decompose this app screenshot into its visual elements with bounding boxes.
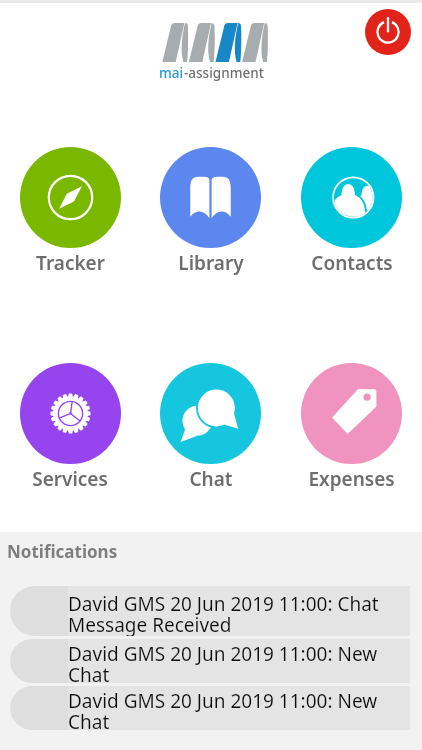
- button[interactable]: David GMS 20 Jun 2019 11:00: Chat Messag…: [0, 586, 422, 636]
- button[interactable]: Contacts: [281, 147, 422, 276]
- button[interactable]: Library: [140, 147, 281, 276]
- staticText: David GMS 20 Jun 2019 11:00: New Chat: [68, 641, 408, 683]
- staticText: Expenses: [308, 466, 395, 492]
- staticText: Tracker: [36, 250, 105, 276]
- button[interactable]: Power off: [365, 9, 411, 55]
- button[interactable]: David GMS 20 Jun 2019 11:00: New Chat: [0, 686, 422, 730]
- staticText: mai: [159, 64, 184, 82]
- button[interactable]: Expenses: [281, 363, 422, 492]
- button[interactable]: Services: [0, 363, 140, 492]
- button[interactable]: Chat: [140, 363, 281, 492]
- staticText: Contacts: [311, 250, 393, 276]
- staticText: Notifications: [7, 540, 118, 563]
- button[interactable]: David GMS 20 Jun 2019 11:00: New Chat: [0, 639, 422, 683]
- staticText: Library: [178, 250, 244, 276]
- staticText: Chat: [189, 466, 233, 492]
- staticText: David GMS 20 Jun 2019 11:00: New Chat: [68, 688, 408, 730]
- staticText: -assignment: [184, 64, 264, 82]
- button[interactable]: Tracker: [0, 147, 140, 276]
- staticText: David GMS 20 Jun 2019 11:00: Chat Messag…: [68, 591, 408, 636]
- staticText: Services: [32, 466, 108, 492]
